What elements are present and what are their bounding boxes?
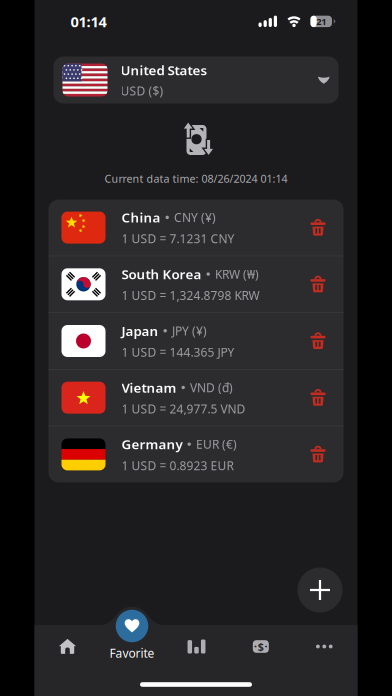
staticText: EUR (€)	[196, 436, 237, 452]
button[interactable]: Home	[51, 630, 84, 662]
staticText: JPY (¥)	[172, 323, 207, 339]
staticText: South Korea	[121, 265, 201, 283]
staticText: 21	[316, 15, 326, 28]
staticText: 01:14	[70, 12, 106, 31]
staticText: $	[258, 639, 264, 654]
button[interactable]: Delete Vietnam	[300, 380, 335, 416]
staticText: 1 USD = 0.8923 EUR	[121, 457, 233, 473]
staticText: 1 USD = 144.365 JPY	[121, 344, 234, 360]
staticText: USD ($)	[120, 83, 163, 99]
staticText: Germany	[121, 435, 182, 453]
button[interactable]: Delete South Korea	[300, 266, 335, 302]
button[interactable]: Add currency	[297, 567, 342, 612]
staticText: China	[121, 208, 160, 226]
staticText: 1 USD = 1,324.8798 KRW	[121, 287, 259, 303]
button[interactable]: United States	[53, 56, 338, 103]
staticText: Vietnam	[121, 379, 176, 396]
button[interactable]: Charts	[180, 631, 213, 661]
button[interactable]: Delete Japan	[300, 323, 335, 359]
staticText: 1 USD = 24,977.5 VND	[121, 401, 245, 417]
staticText: Favorite	[109, 645, 154, 661]
staticText: Current data time: 08/26/2024 01:14	[104, 171, 287, 186]
button[interactable]: Delete Germany	[300, 436, 335, 472]
staticText: Japan	[121, 322, 158, 340]
staticText: 1 USD = 7.1231 CNY	[121, 231, 234, 247]
staticText: CNY (¥)	[174, 209, 216, 225]
staticText: VND (đ)	[190, 379, 233, 395]
button[interactable]: More	[308, 637, 341, 656]
button[interactable]: Converter	[245, 631, 277, 662]
staticText: United States	[120, 61, 207, 79]
button[interactable]: Delete China	[300, 210, 335, 246]
staticText: KRW (₩)	[215, 266, 259, 282]
button[interactable]: Favorite	[105, 609, 159, 663]
